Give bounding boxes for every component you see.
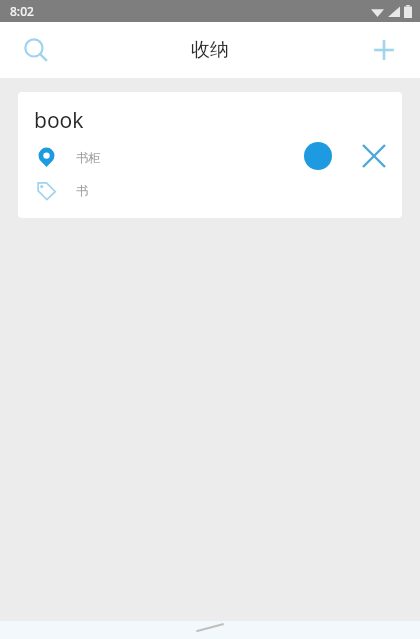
button[interactable]: Search [12,26,60,74]
button[interactable]: Delete [356,138,392,174]
staticText: 书 [76,183,88,198]
staticText: 书柜 [76,150,100,165]
button[interactable]: Color [300,138,336,174]
staticText: 8:02 [10,3,34,19]
button[interactable]: Add [360,26,408,74]
staticText: book [34,106,84,135]
staticText: 收纳 [191,38,229,62]
button[interactable]: book [18,92,402,218]
